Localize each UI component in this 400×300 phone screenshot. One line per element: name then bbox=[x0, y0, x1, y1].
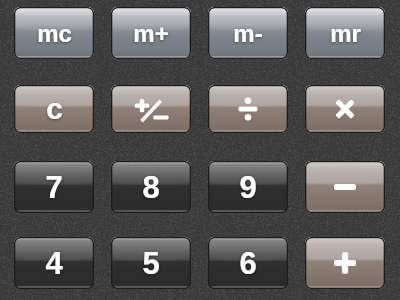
button[interactable]: plus bbox=[305, 237, 385, 289]
staticText: mc bbox=[37, 20, 72, 47]
button[interactable]: c bbox=[14, 85, 94, 133]
button[interactable]: multiply bbox=[305, 85, 385, 133]
staticText: 5 bbox=[142, 246, 160, 281]
button[interactable]: 5 bbox=[111, 237, 191, 289]
button[interactable]: 7 bbox=[14, 161, 94, 213]
button[interactable]: 4 bbox=[14, 237, 94, 289]
staticText: 7 bbox=[45, 170, 63, 205]
staticText: 9 bbox=[239, 170, 257, 205]
staticText: c bbox=[46, 92, 63, 126]
staticText: m- bbox=[233, 20, 263, 47]
button[interactable]: m- bbox=[208, 7, 288, 59]
button[interactable]: 8 bbox=[111, 161, 191, 213]
button[interactable]: mr bbox=[305, 7, 385, 59]
staticText: m+ bbox=[133, 20, 169, 47]
button[interactable]: 9 bbox=[208, 161, 288, 213]
button[interactable]: mc bbox=[14, 7, 94, 59]
button[interactable]: m+ bbox=[111, 7, 191, 59]
button[interactable]: divide bbox=[208, 85, 288, 133]
button[interactable]: plus minus bbox=[111, 85, 191, 133]
staticText: 4 bbox=[45, 246, 63, 281]
button[interactable]: minus bbox=[305, 161, 385, 213]
button[interactable]: 6 bbox=[208, 237, 288, 289]
staticText: 6 bbox=[239, 246, 257, 281]
staticText: mr bbox=[330, 20, 361, 47]
staticText: 8 bbox=[142, 170, 160, 205]
